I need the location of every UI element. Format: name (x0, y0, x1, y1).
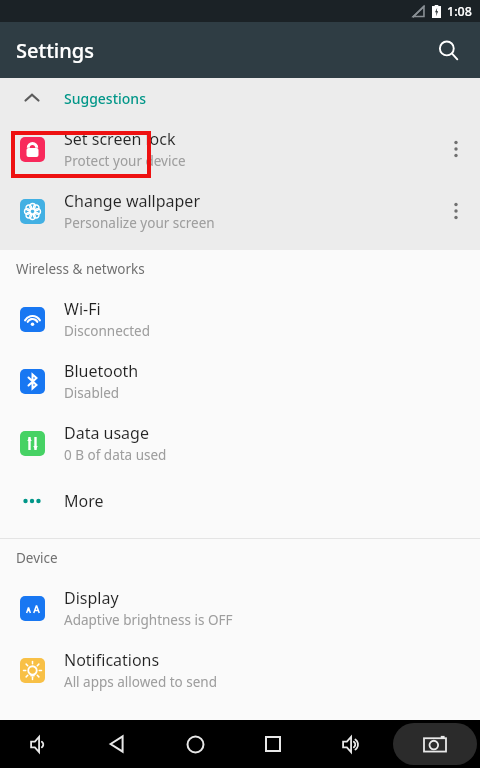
button[interactable]: Search (424, 26, 472, 74)
staticText: Personalize your screen (64, 214, 215, 232)
button[interactable]: Back (78, 720, 156, 768)
staticText: All apps allowed to send (64, 673, 218, 691)
button[interactable]: Volume down (0, 720, 78, 768)
staticText: Suggestions (64, 89, 146, 108)
button[interactable]: Wi-Fi (0, 288, 480, 350)
staticText: Wireless & networks (16, 260, 145, 278)
button[interactable]: Bluetooth (0, 350, 480, 412)
staticText: Protect your device (64, 152, 186, 170)
staticText: Disabled (64, 384, 120, 402)
staticText: Set screen lock (64, 128, 176, 150)
staticText: Change wallpaper (64, 190, 200, 212)
staticText: Notifications (64, 649, 160, 671)
staticText: 0 B of data used (64, 446, 167, 464)
button[interactable]: Volume up (312, 720, 390, 768)
button[interactable]: Display (0, 577, 480, 639)
button[interactable]: Home (156, 720, 234, 768)
button[interactable]: Screenshot (393, 723, 477, 765)
staticText: Adaptive brightness is OFF (64, 611, 233, 629)
button[interactable]: More (0, 474, 480, 528)
staticText: 1:08 (447, 3, 472, 20)
staticText: Disconnected (64, 322, 151, 340)
button[interactable]: Change wallpaper (0, 180, 480, 242)
staticText: Wi-Fi (64, 298, 101, 320)
staticText: More (64, 490, 104, 512)
button[interactable]: Recent apps (234, 720, 312, 768)
button[interactable]: Notifications (0, 639, 480, 701)
button[interactable]: More options (432, 118, 480, 180)
staticText: Display (64, 587, 119, 609)
staticText: Data usage (64, 422, 149, 444)
staticText: Bluetooth (64, 360, 139, 382)
button[interactable]: Suggestions (0, 78, 480, 118)
button[interactable]: Data usage (0, 412, 480, 474)
button[interactable]: More options (432, 180, 480, 242)
staticText: Settings (16, 37, 94, 64)
staticText: Device (16, 549, 58, 567)
button[interactable]: Set screen lock (0, 118, 480, 180)
